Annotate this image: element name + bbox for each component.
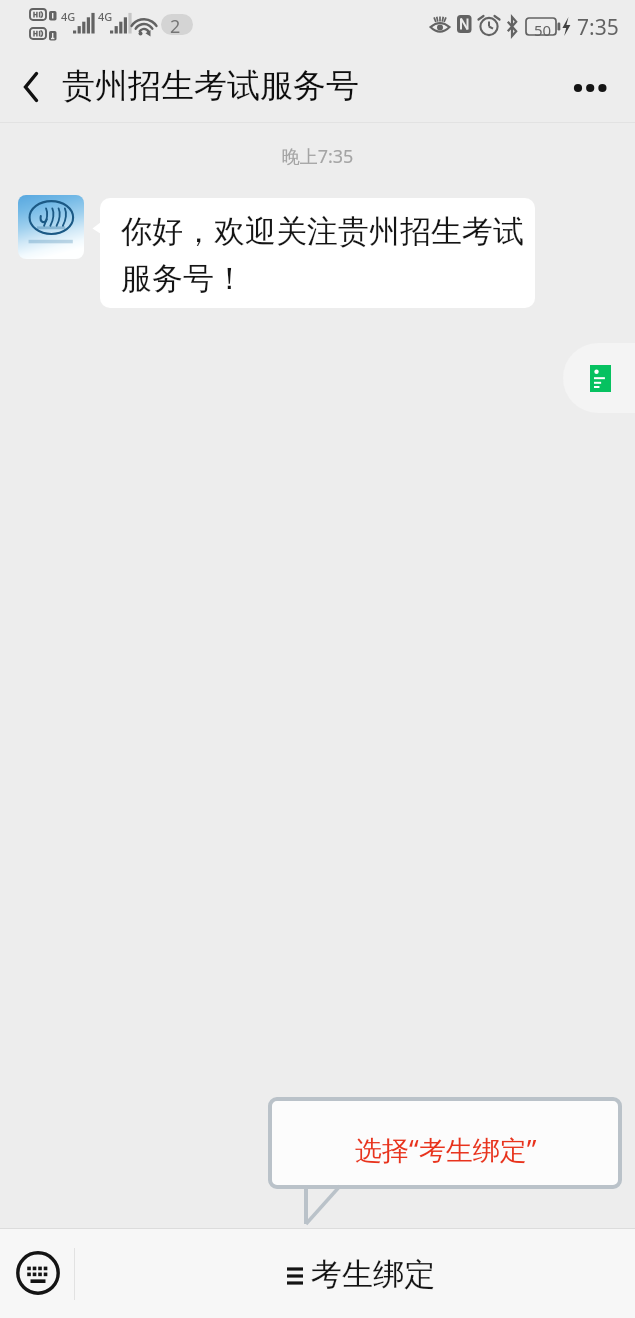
button[interactable]: 选择“考生绑定” bbox=[270, 1105, 622, 1193]
staticText: 4G bbox=[61, 9, 76, 24]
staticText: 50 bbox=[534, 20, 552, 40]
button[interactable]: More options bbox=[561, 58, 619, 116]
button[interactable]: Back bbox=[2, 58, 60, 116]
button[interactable]: 贵州招生考试服务号 avatar bbox=[18, 195, 84, 259]
staticText: 晚上7:35 bbox=[0, 144, 635, 169]
staticText: 贵州招生考试服务号 bbox=[62, 65, 359, 107]
staticText: 7:35 bbox=[577, 13, 619, 42]
staticText: 考生绑定 bbox=[311, 1255, 435, 1294]
button[interactable]: Mini program shortcut bbox=[563, 343, 635, 413]
staticText: 你好，欢迎关注贵州招生考试服务号！ bbox=[121, 212, 525, 298]
button[interactable]: 考生绑定 bbox=[75, 1229, 635, 1318]
staticText: 4G bbox=[98, 9, 113, 24]
staticText: 选择“考生绑定” bbox=[355, 1131, 537, 1168]
button[interactable]: Keyboard bbox=[7, 1242, 69, 1304]
button[interactable]: 你好，欢迎关注贵州招生考试服务号！ bbox=[100, 198, 535, 308]
staticText: 2 bbox=[170, 14, 181, 39]
